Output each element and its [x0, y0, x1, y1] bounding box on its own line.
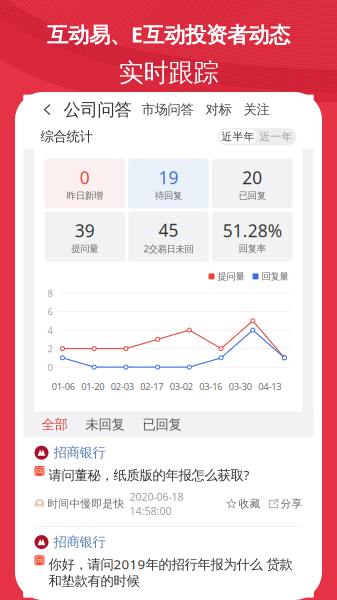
staticText: 关注 [243, 101, 269, 118]
staticText: 你好，请问2019年的招行年报为什么 贷款和垫款有的时候 [48, 555, 292, 589]
staticText: 问 [35, 465, 44, 477]
staticText: 03-16 [199, 380, 222, 392]
staticText: 6 [47, 305, 52, 318]
staticText: 提问量 [217, 271, 244, 282]
staticText: 39 [75, 219, 95, 242]
staticText: 8 [47, 287, 52, 299]
staticText: 昨日新增 [67, 190, 103, 201]
staticText: 51.28% [223, 219, 282, 242]
staticText: 问 [35, 555, 44, 566]
button[interactable]: 市场问答 [135, 95, 199, 125]
button[interactable]: 招商银行 [23, 527, 313, 597]
staticText: 0 [47, 361, 52, 373]
staticText: 已回复 [239, 190, 266, 201]
button[interactable]: 返回 [35, 95, 59, 125]
staticText: 2 [47, 342, 52, 355]
staticText: 时间中慢即是快 [47, 497, 124, 510]
staticText: 对标 [205, 101, 231, 118]
staticText: 0 [80, 166, 90, 189]
staticText: 互动易、E互动投资者动态 [47, 20, 290, 48]
button[interactable]: 近半年 [219, 130, 257, 144]
button[interactable]: 关注 [237, 95, 275, 125]
staticText: 20 [242, 166, 262, 189]
staticText: 请问董秘，纸质版的年报怎么获取? [48, 466, 249, 484]
staticText: 04-13 [258, 380, 281, 392]
staticText: 提问量 [71, 243, 98, 254]
staticText: 实时跟踪 [118, 57, 218, 88]
button[interactable]: 全部 [35, 416, 73, 433]
staticText: 19 [158, 166, 178, 189]
button[interactable]: 已回复 [130, 416, 187, 433]
staticText: 4 [47, 324, 52, 336]
button[interactable]: 未回复 [73, 416, 130, 433]
staticText: 01-06 [52, 380, 75, 392]
staticText: 综合统计 [40, 128, 92, 145]
staticText: 招商银行 [53, 534, 105, 550]
staticText: 近一年 [259, 130, 292, 143]
staticText: 招商银行 [53, 444, 105, 461]
staticText: 待回复 [155, 190, 182, 201]
staticText: 2交易日未回 [143, 242, 193, 255]
button[interactable]: 对标 [199, 95, 237, 125]
staticText: 回复率 [239, 243, 266, 254]
staticText: 市场问答 [141, 101, 193, 118]
staticText: 03-30 [229, 380, 252, 392]
button[interactable]: 近一年 [257, 130, 295, 144]
staticText: 全部 [41, 416, 67, 433]
staticText: 公司问答 [63, 99, 131, 120]
staticText: 02-17 [140, 380, 163, 392]
staticText: 已回复 [142, 416, 181, 433]
button[interactable]: 公司问答 [59, 95, 135, 125]
staticText: 回复量 [261, 271, 288, 282]
staticText: 收藏 [238, 497, 260, 510]
staticText: 01-20 [81, 380, 104, 392]
staticText: 近半年 [221, 130, 254, 143]
staticText: 未回复 [85, 416, 124, 433]
staticText: 03-02 [170, 380, 193, 392]
staticText: 2020-06-18 14:58:00 [129, 490, 183, 518]
staticText: 分享 [280, 497, 302, 510]
staticText: 45 [158, 218, 178, 241]
staticText: 02-03 [111, 380, 134, 392]
button[interactable]: 招商银行 [23, 437, 313, 526]
